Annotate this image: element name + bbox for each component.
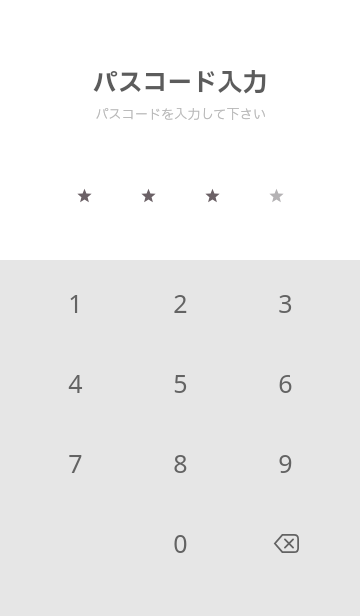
staticText: 5 (173, 366, 188, 400)
staticText: 4 (68, 366, 83, 400)
staticText: 1 (68, 286, 83, 320)
staticText: 6 (278, 366, 293, 400)
button[interactable]: 2 (128, 263, 233, 343)
staticText: 8 (173, 446, 188, 480)
button[interactable]: 8 (128, 423, 233, 503)
button[interactable]: 0 (128, 503, 233, 583)
staticText: 3 (278, 286, 293, 320)
button[interactable]: 4 (23, 343, 128, 423)
staticText: 7 (68, 446, 83, 480)
staticText: 2 (173, 286, 188, 320)
button[interactable]: 3 (233, 263, 338, 343)
staticText: 0 (173, 526, 188, 560)
button[interactable]: Backspace (233, 503, 338, 583)
button[interactable]: 6 (233, 343, 338, 423)
button[interactable]: 5 (128, 343, 233, 423)
button[interactable]: 7 (23, 423, 128, 503)
staticText: パスコード入力 (92, 65, 268, 102)
staticText: パスコードを入力して下さい (95, 105, 266, 125)
button[interactable]: 1 (23, 263, 128, 343)
staticText: 9 (278, 446, 293, 480)
button[interactable]: 9 (233, 423, 338, 503)
